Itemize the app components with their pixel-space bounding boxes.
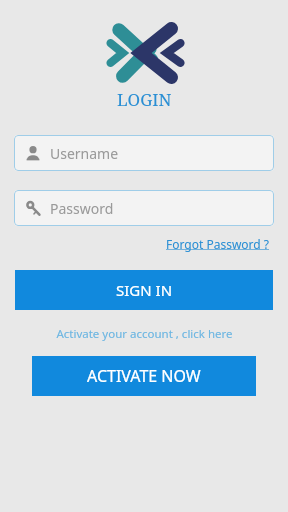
button[interactable]: Password icon: [14, 190, 274, 226]
button[interactable]: Username icon: [14, 135, 274, 171]
other: Username icon: [25, 145, 41, 161]
staticText: ACTIVATE NOW: [87, 365, 201, 387]
button[interactable]: Activate your account , click here: [52, 324, 237, 344]
staticText: SIGN IN: [116, 280, 173, 300]
button[interactable]: SIGN IN: [15, 270, 273, 310]
button[interactable]: ACTIVATE NOW: [32, 356, 256, 396]
staticText: Forgot Password ?: [166, 236, 270, 252]
staticText: Username: [50, 144, 119, 163]
staticText: Password: [50, 199, 114, 218]
staticText: Activate your account , click here: [56, 326, 233, 342]
staticText: LOGIN: [117, 88, 172, 111]
other: Password icon: [25, 200, 41, 216]
button[interactable]: Forgot Password ?: [164, 234, 272, 254]
